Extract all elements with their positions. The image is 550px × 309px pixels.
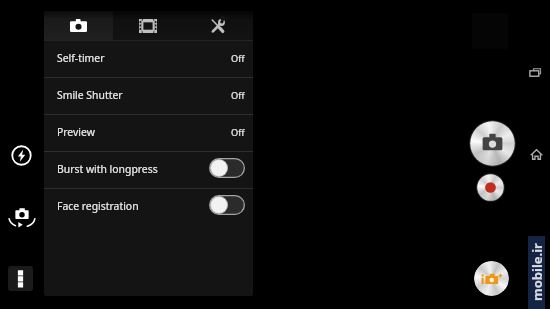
button[interactable]: Video tab <box>113 11 183 40</box>
staticText: Face registration <box>57 199 139 213</box>
staticText: Off <box>231 126 245 139</box>
button[interactable]: Switch camera <box>9 207 35 227</box>
button[interactable]: Home <box>528 146 545 163</box>
button[interactable]: Preview <box>44 115 253 151</box>
button[interactable]: Smile Shutter <box>44 78 253 114</box>
button[interactable]: Flash mode <box>11 145 32 166</box>
button[interactable]: Take photo <box>469 120 516 167</box>
staticText: Self-timer <box>57 51 105 65</box>
staticText: mobile.ir <box>528 243 545 301</box>
button[interactable]: More options <box>8 266 33 291</box>
staticText: Off <box>231 89 245 102</box>
button[interactable]: Self-timer <box>44 41 253 77</box>
button[interactable]: Gallery <box>474 261 509 296</box>
button[interactable]: Face registration <box>44 189 253 225</box>
button[interactable]: Settings tab <box>183 11 253 40</box>
button[interactable]: Recents <box>527 64 544 81</box>
staticText: Preview <box>57 125 95 139</box>
button[interactable]: Photo tab <box>44 11 113 40</box>
staticText: Burst with longpress <box>57 162 158 176</box>
button[interactable]: Burst with longpress <box>44 152 253 188</box>
staticText: Smile Shutter <box>57 88 123 102</box>
button[interactable]: Record video <box>476 173 505 202</box>
staticText: Off <box>231 52 245 65</box>
